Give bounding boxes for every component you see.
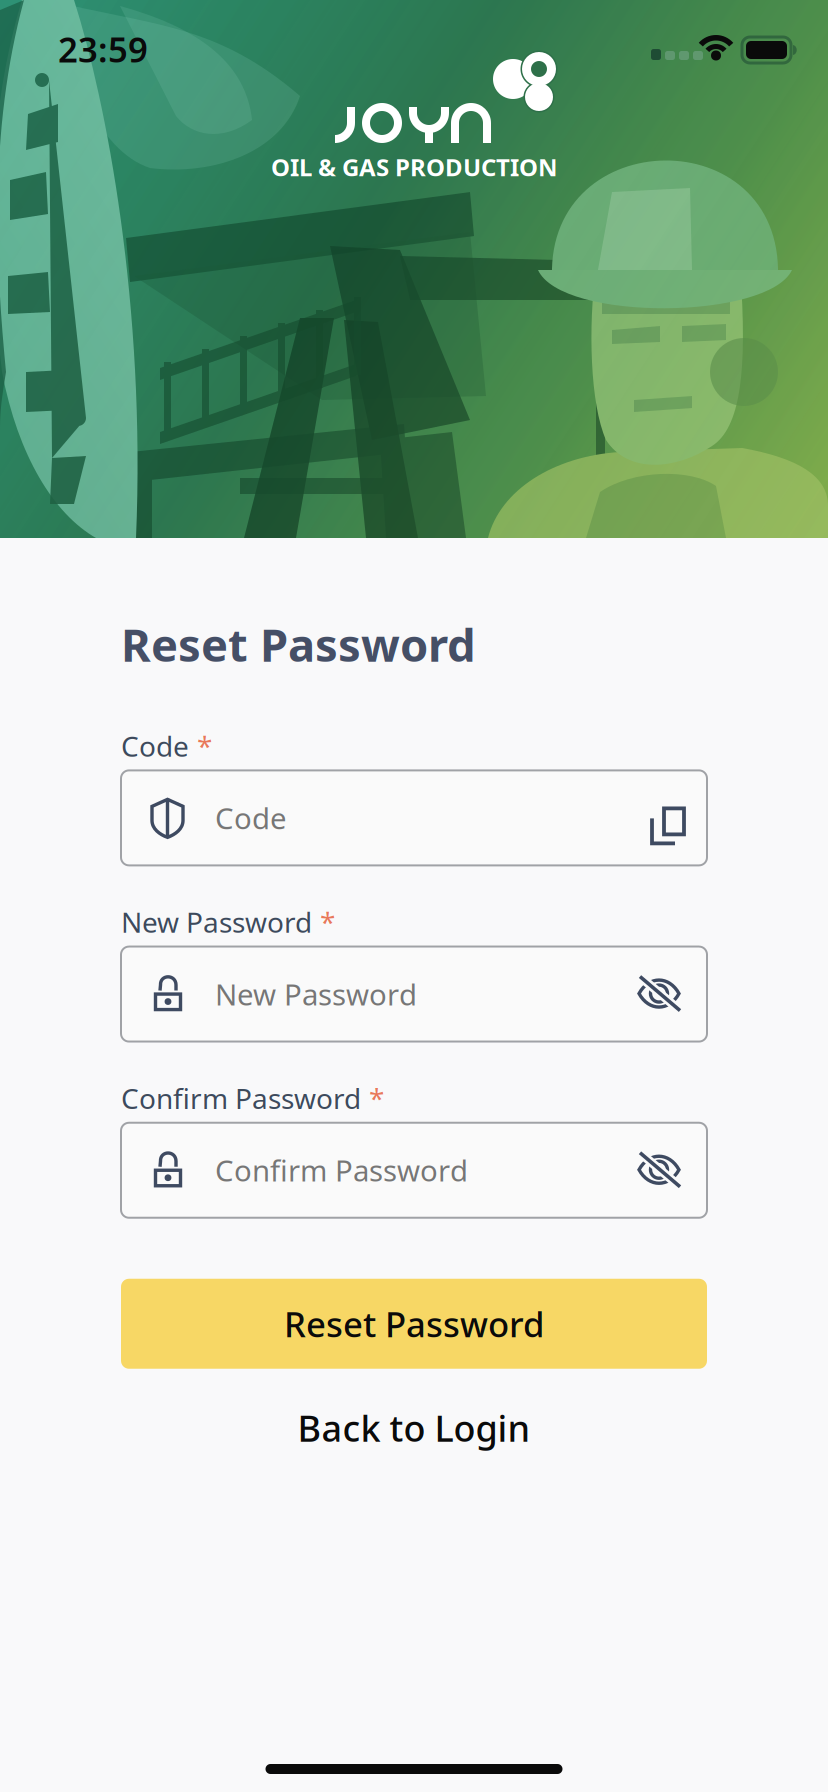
staticText: OIL & GAS PRODUCTION xyxy=(271,151,558,183)
staticText: New Password xyxy=(121,903,312,941)
button[interactable]: Copy code xyxy=(121,770,193,847)
button[interactable]: Show confirm password xyxy=(121,1123,203,1198)
staticText: Reset Password xyxy=(121,614,476,674)
staticText: * xyxy=(369,1080,384,1117)
button[interactable]: Code xyxy=(121,770,707,865)
staticText: Code xyxy=(215,798,287,837)
button[interactable]: Reset Password xyxy=(121,1279,707,1369)
staticText: Reset Password xyxy=(284,1301,544,1347)
button[interactable]: Show new password xyxy=(121,947,203,1022)
staticText: Back to Login xyxy=(297,1404,530,1452)
staticText: 23:59 xyxy=(58,26,148,72)
button[interactable]: New Password xyxy=(121,947,707,1042)
staticText: Confirm Password xyxy=(215,1151,468,1190)
staticText: New Password xyxy=(215,975,417,1014)
staticText: * xyxy=(320,903,335,941)
button[interactable]: Back to Login xyxy=(121,1404,707,1452)
staticText: * xyxy=(197,727,212,764)
staticText: Confirm Password xyxy=(121,1080,361,1117)
staticText: Code xyxy=(121,727,189,764)
button[interactable]: Confirm Password xyxy=(121,1123,707,1218)
